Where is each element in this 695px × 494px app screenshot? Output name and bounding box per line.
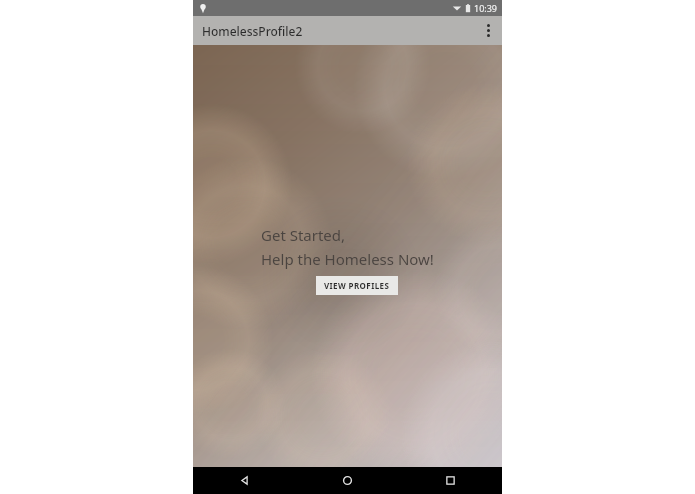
button[interactable]: More options (474, 16, 502, 45)
button[interactable]: Home (296, 467, 399, 494)
staticText: HomelessProfile2 (202, 23, 303, 39)
staticText: Get Started, (261, 225, 346, 245)
button[interactable]: Recent apps (399, 467, 502, 494)
staticText: Help the Homeless Now! (261, 249, 434, 269)
staticText: 10:39 (474, 2, 498, 14)
button[interactable]: Back (193, 467, 296, 494)
button[interactable]: VIEW PROFILES (316, 276, 398, 295)
staticText: VIEW PROFILES (324, 280, 390, 291)
